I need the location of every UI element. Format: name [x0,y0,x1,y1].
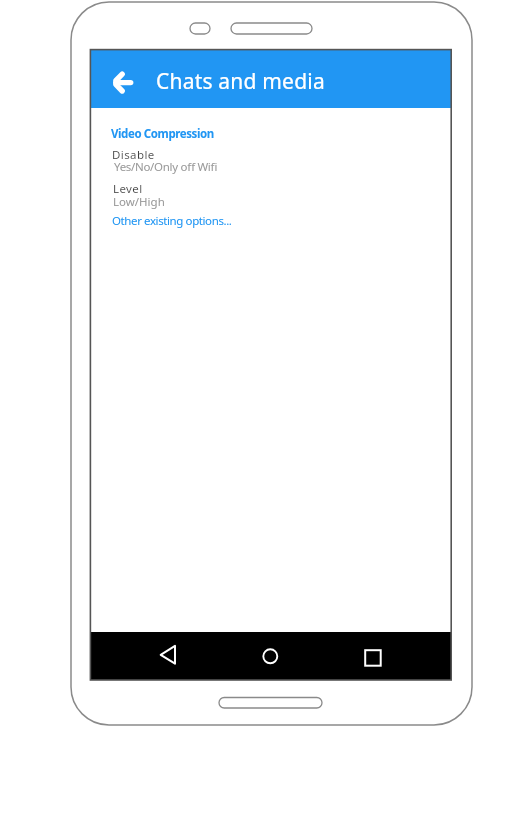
button[interactable] [153,640,183,670]
button[interactable]: Other existing options... [110,211,230,227]
button[interactable] [357,642,387,672]
staticText: Low/High [113,194,165,210]
staticText: Video Compression [111,126,214,142]
staticText: Yes/No/Only off Wifi [114,159,218,175]
button[interactable] [103,62,143,102]
staticText: Disable [112,147,155,163]
staticText: Other existing options... [112,213,232,229]
staticText: Chats and media [156,67,325,96]
staticText: Level [113,181,143,197]
button[interactable] [255,641,285,671]
